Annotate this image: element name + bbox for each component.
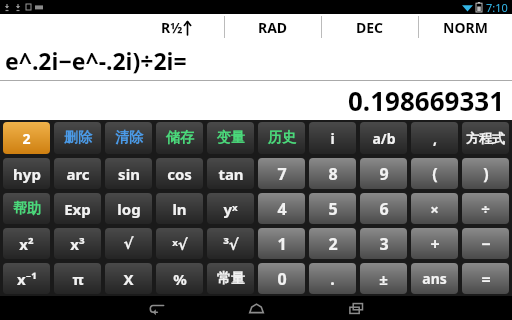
button[interactable]: RAD	[225, 14, 321, 40]
button[interactable]: hyp	[3, 158, 50, 189]
button[interactable]: x³	[54, 228, 101, 259]
button[interactable]: .	[309, 263, 356, 294]
button[interactable]: ˣ√	[156, 228, 203, 259]
button[interactable]: Recent apps	[327, 296, 385, 320]
staticText: 历史	[268, 129, 296, 147]
staticText: 1	[277, 233, 287, 255]
button[interactable]: −	[462, 228, 509, 259]
staticText: a/b	[372, 129, 396, 148]
button[interactable]: 6	[360, 193, 407, 224]
staticText: ÷	[481, 199, 490, 219]
staticText: √	[123, 235, 134, 252]
staticText: yˣ	[223, 199, 238, 219]
staticText: 删除	[64, 129, 92, 147]
button[interactable]: a/b	[360, 122, 407, 154]
button[interactable]: 3	[360, 228, 407, 259]
staticText: cos	[167, 164, 192, 184]
button[interactable]: 1	[258, 228, 305, 259]
button[interactable]: 9	[360, 158, 407, 189]
staticText: 5	[328, 198, 338, 220]
staticText: R½	[161, 18, 183, 37]
button[interactable]: 删除	[54, 122, 101, 154]
button[interactable]: ans	[411, 263, 458, 294]
staticText: log	[117, 199, 141, 219]
staticText: e^.2i−e^-.2i)÷2i=	[5, 45, 187, 76]
button[interactable]: X	[105, 263, 152, 294]
staticText: sin	[118, 164, 140, 184]
staticText: )	[483, 163, 489, 185]
staticText: x⁻¹	[17, 269, 37, 289]
staticText: x²	[19, 234, 34, 254]
staticText: 6	[379, 198, 389, 220]
button[interactable]: Home	[227, 296, 285, 320]
button[interactable]: 帮助	[3, 193, 50, 224]
staticText: ˣ√	[172, 234, 188, 254]
button[interactable]: Back	[127, 296, 185, 320]
staticText: 8	[328, 163, 338, 185]
button[interactable]: 变量	[207, 122, 254, 154]
staticText: 帮助	[13, 200, 41, 218]
button[interactable]: 7	[258, 158, 305, 189]
button[interactable]: log	[105, 193, 152, 224]
button[interactable]: 储存	[156, 122, 203, 154]
staticText: %	[173, 269, 187, 289]
staticText: ans	[422, 269, 447, 288]
button[interactable]: )	[462, 158, 509, 189]
button[interactable]: arc	[54, 158, 101, 189]
staticText: −	[481, 233, 491, 255]
button[interactable]: sin	[105, 158, 152, 189]
staticText: 3	[379, 233, 389, 255]
button[interactable]: i	[309, 122, 356, 154]
button[interactable]: 8	[309, 158, 356, 189]
button[interactable]: 方程式	[462, 122, 509, 154]
button[interactable]: 常量	[207, 263, 254, 294]
button[interactable]: NORM	[419, 14, 512, 40]
button[interactable]: %	[156, 263, 203, 294]
button[interactable]: ,	[411, 122, 458, 154]
button[interactable]: 5	[309, 193, 356, 224]
button[interactable]: ÷	[462, 193, 509, 224]
button[interactable]: tan	[207, 158, 254, 189]
staticText: 0.198669331	[348, 83, 505, 118]
staticText: 储存	[166, 129, 194, 147]
staticText: ×	[430, 199, 439, 219]
staticText: NORM	[443, 18, 488, 37]
staticText: X	[123, 269, 134, 289]
button[interactable]: yˣ	[207, 193, 254, 224]
staticText: 9	[379, 163, 389, 185]
staticText: ³√	[223, 234, 239, 254]
button[interactable]: ±	[360, 263, 407, 294]
staticText: 方程式	[466, 130, 505, 146]
button[interactable]: √	[105, 228, 152, 259]
button[interactable]: x²	[3, 228, 50, 259]
button[interactable]: (	[411, 158, 458, 189]
staticText: hyp	[13, 164, 41, 184]
staticText: 变量	[217, 129, 245, 147]
button[interactable]: ×	[411, 193, 458, 224]
staticText: DEC	[356, 18, 384, 37]
button[interactable]: Exp	[54, 193, 101, 224]
staticText: ,	[433, 129, 437, 148]
staticText: π	[72, 269, 84, 289]
staticText: ±	[379, 269, 388, 289]
staticText: =	[481, 268, 491, 290]
button[interactable]: R½	[0, 14, 224, 40]
button[interactable]: ³√	[207, 228, 254, 259]
staticText: arc	[66, 164, 90, 184]
button[interactable]: =	[462, 263, 509, 294]
button[interactable]: 2	[309, 228, 356, 259]
button[interactable]: π	[54, 263, 101, 294]
button[interactable]: 清除	[105, 122, 152, 154]
button[interactable]: 历史	[258, 122, 305, 154]
button[interactable]: +	[411, 228, 458, 259]
button[interactable]: DEC	[322, 14, 418, 40]
button[interactable]: cos	[156, 158, 203, 189]
button[interactable]: x⁻¹	[3, 263, 50, 294]
button[interactable]: 4	[258, 193, 305, 224]
staticText: tan	[218, 164, 244, 184]
button[interactable]: 0	[258, 263, 305, 294]
button[interactable]: ln	[156, 193, 203, 224]
staticText: 常量	[217, 270, 245, 288]
button[interactable]: 2	[3, 122, 50, 154]
staticText: 2	[22, 129, 31, 148]
